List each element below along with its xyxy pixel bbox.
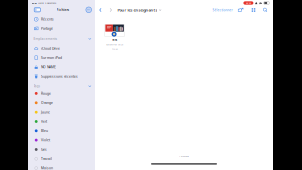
button[interactable]: Test bbox=[100, 24, 130, 50]
button[interactable]: Jaune bbox=[28, 108, 95, 117]
button[interactable]: Mode d'affichage bbox=[247, 5, 259, 14]
staticText: Suppressions récentes bbox=[41, 74, 78, 79]
staticText: Bleu bbox=[41, 129, 48, 133]
button[interactable]: Réduire Emplacements bbox=[88, 36, 92, 41]
staticText: 09:25 bbox=[246, 2, 251, 4]
staticText: Fichiers bbox=[57, 8, 70, 12]
staticText: Gris bbox=[41, 147, 47, 152]
staticText: Test bbox=[112, 38, 117, 42]
staticText: Orange bbox=[41, 101, 53, 105]
staticText: Récents bbox=[41, 17, 54, 21]
staticText: Violet bbox=[41, 138, 50, 142]
button[interactable]: Pour les enseignants bbox=[114, 5, 161, 14]
staticText: iCloud Drive bbox=[41, 46, 60, 51]
button[interactable]: Partagé bbox=[28, 24, 95, 33]
staticText: Partagé bbox=[41, 26, 53, 31]
button[interactable]: Rechercher bbox=[259, 5, 271, 14]
staticText: Sur mon iPad bbox=[41, 55, 62, 60]
staticText: Mardi 3 décembre bbox=[38, 1, 56, 4]
staticText: Vert bbox=[41, 119, 47, 124]
button[interactable]: Sélectionner bbox=[211, 5, 234, 14]
staticText: Pour les enseignants bbox=[117, 7, 157, 13]
button[interactable]: NO NAME bbox=[28, 63, 95, 72]
button[interactable]: Sur mon iPad bbox=[28, 53, 95, 62]
button[interactable]: Bleu bbox=[28, 126, 95, 135]
staticText: Emplacements bbox=[34, 37, 58, 41]
staticText: Travail bbox=[41, 157, 52, 161]
button[interactable]: Plus d'options bbox=[85, 6, 92, 14]
staticText: Tags bbox=[34, 84, 41, 88]
button[interactable]: Orange bbox=[28, 98, 95, 107]
button[interactable]: Précédent bbox=[97, 5, 103, 14]
button[interactable]: Réduire Tags bbox=[88, 84, 92, 89]
staticText: Maison bbox=[41, 166, 53, 170]
staticText: aujourd'hui 09:25 bbox=[106, 43, 123, 46]
button[interactable]: Récents bbox=[28, 15, 95, 24]
button[interactable]: Violet bbox=[28, 136, 95, 145]
button[interactable]: Suivant bbox=[103, 5, 114, 14]
button[interactable]: Suppressions récentes bbox=[28, 72, 95, 81]
staticText: Rouge bbox=[41, 91, 51, 96]
button[interactable]: Vert bbox=[28, 117, 95, 126]
staticText: 719 Ko bbox=[112, 47, 118, 50]
button[interactable]: Masquer la barre latérale bbox=[34, 6, 41, 14]
button[interactable]: Maison bbox=[28, 164, 95, 170]
button[interactable]: Partager bbox=[234, 5, 247, 14]
staticText: Sélectionner bbox=[212, 8, 232, 12]
button[interactable]: iCloud Drive bbox=[28, 44, 95, 53]
button[interactable]: Rouge bbox=[28, 89, 95, 98]
button[interactable]: Gris bbox=[28, 145, 95, 154]
staticText: Jaune bbox=[41, 110, 50, 114]
staticText: NO NAME bbox=[41, 65, 56, 69]
button[interactable]: Travail bbox=[28, 154, 95, 163]
staticText: 09:25 bbox=[32, 1, 37, 5]
staticText: 1 élément bbox=[179, 154, 189, 158]
